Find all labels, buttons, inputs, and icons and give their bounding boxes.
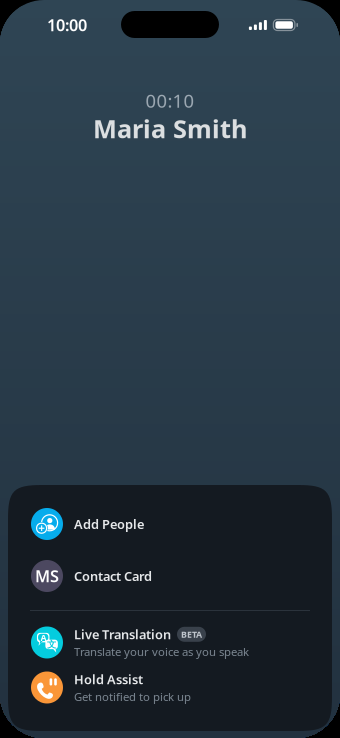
staticText: 00:10 <box>145 88 194 113</box>
staticText: Live Translation <box>74 626 171 643</box>
button[interactable]: MS <box>8 550 332 602</box>
staticText: BETA <box>181 628 202 640</box>
button[interactable]: Add People <box>8 498 332 550</box>
staticText: MS <box>35 565 59 587</box>
staticText: Hold Assist <box>74 671 143 688</box>
staticText: Add People <box>74 515 144 533</box>
staticText: Get notified to pick up <box>74 689 191 704</box>
staticText: 文 <box>47 639 56 650</box>
staticText: Translate your voice as you speak <box>74 644 249 659</box>
staticText: Maria Smith <box>93 111 247 146</box>
button[interactable]: A <box>8 620 332 665</box>
staticText: Contact Card <box>74 567 152 585</box>
staticText: 10:00 <box>47 14 87 36</box>
staticText: A <box>40 632 46 644</box>
button[interactable]: Hold Assist <box>8 665 332 710</box>
